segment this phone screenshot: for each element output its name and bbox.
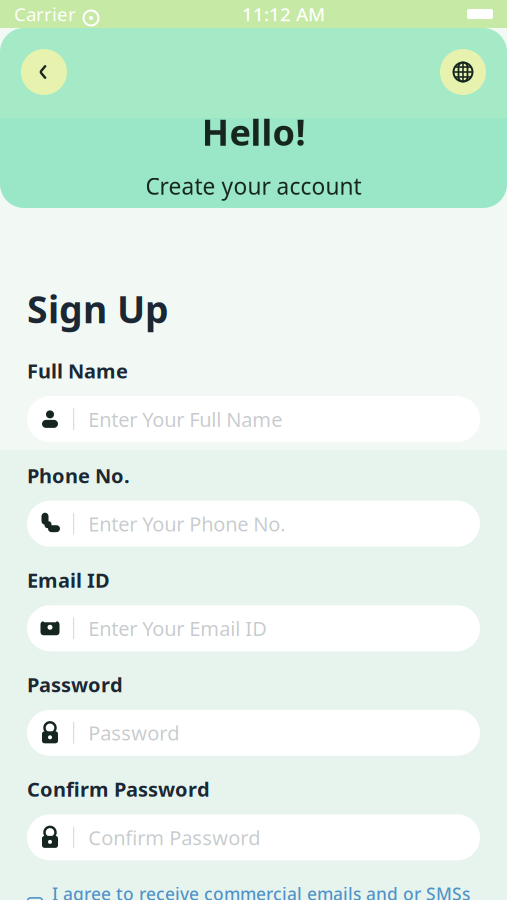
staticText: Enter Your Email ID: [88, 615, 267, 642]
staticText: Phone No.: [27, 462, 130, 489]
button[interactable]: Confirm Password: [27, 814, 480, 860]
staticText: Enter Your Phone No.: [88, 510, 285, 537]
staticText: Create your account: [145, 171, 361, 201]
staticText: Enter Your Full Name: [88, 406, 282, 432]
staticText: 11:12 AM: [242, 2, 325, 26]
button[interactable]: Enter Your Email ID: [27, 605, 480, 651]
button[interactable]: Enter Your Full Name: [27, 396, 480, 442]
button[interactable]: Enter Your Phone No.: [27, 501, 480, 547]
staticText: Password: [27, 671, 123, 698]
button[interactable]: Back: [18, 46, 70, 98]
staticText: Confirm Password: [88, 824, 260, 851]
staticText: Full Name: [27, 358, 128, 384]
button[interactable]: Change language: [437, 46, 489, 98]
staticText: Carrier: [14, 2, 76, 26]
staticText: Confirm Password: [27, 776, 210, 802]
button[interactable]: I agree to receive commercial emails and…: [27, 882, 480, 900]
staticText: Password: [88, 719, 179, 746]
staticText: Hello!: [201, 108, 305, 156]
staticText: Sign Up: [27, 284, 169, 334]
staticText: Email ID: [27, 567, 110, 593]
staticText: I agree to receive commercial emails and…: [52, 882, 470, 900]
button[interactable]: Password: [27, 710, 480, 756]
